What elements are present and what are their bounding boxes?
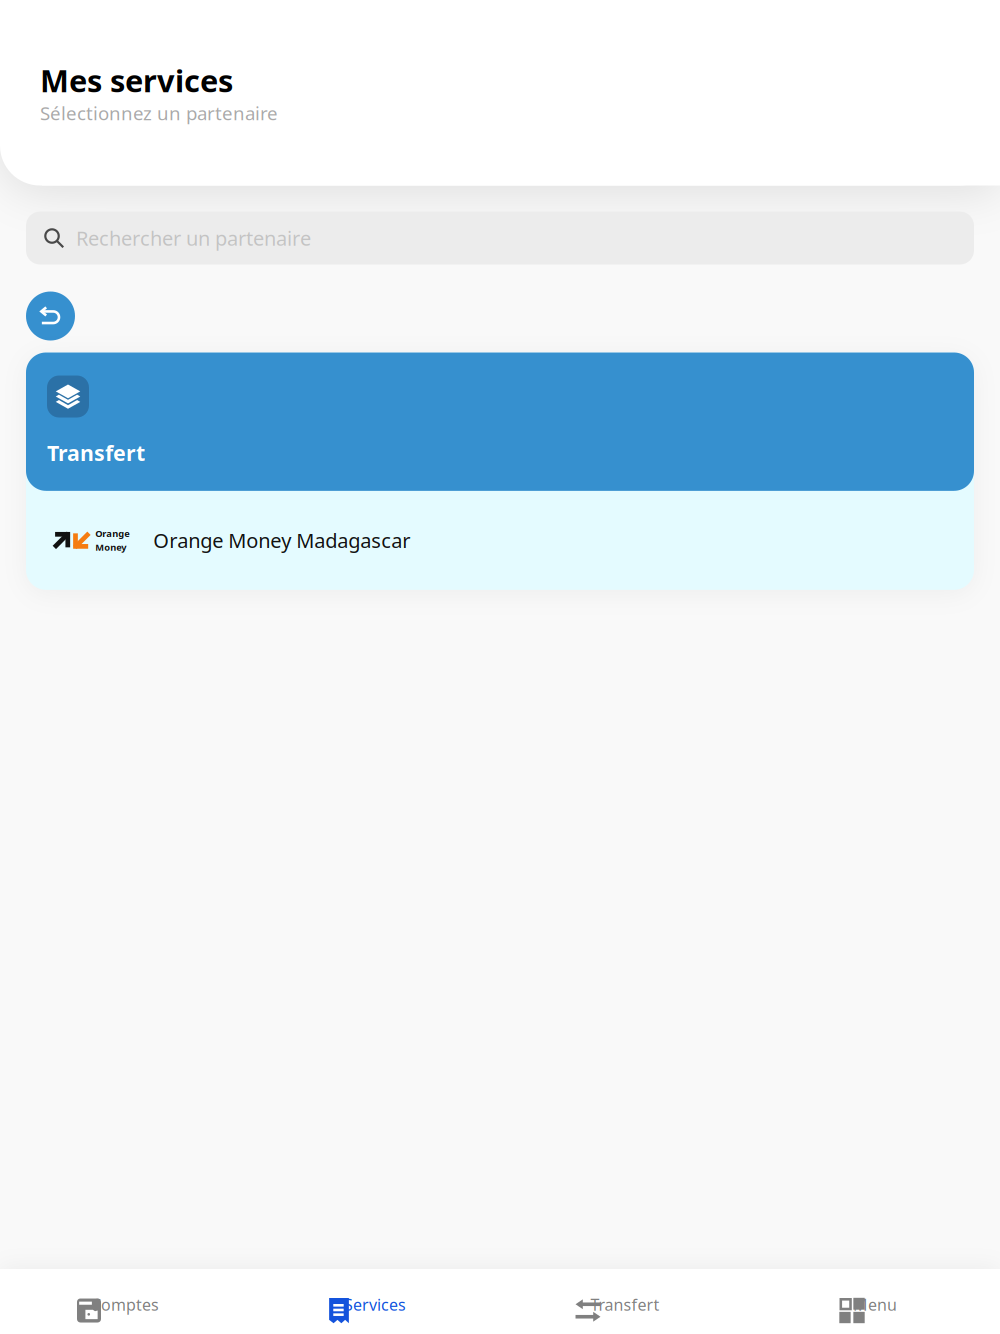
button[interactable]: Rechercher un partenaire xyxy=(26,211,974,264)
button[interactable]: Transfert xyxy=(500,1269,750,1334)
staticText: Sélectionnez un partenaire xyxy=(40,101,278,125)
staticText: Mes services xyxy=(40,60,233,101)
staticText: Orange xyxy=(95,527,130,540)
staticText: Transfert xyxy=(47,438,145,467)
button[interactable]: Services xyxy=(250,1269,500,1334)
staticText: Menu xyxy=(853,1294,897,1315)
staticText: Comptes xyxy=(91,1294,159,1315)
staticText: Services xyxy=(344,1294,406,1315)
button[interactable]: Menu xyxy=(750,1269,1000,1334)
button[interactable]: Retour xyxy=(26,291,75,340)
button[interactable]: Orange xyxy=(26,491,974,590)
button[interactable]: Comptes xyxy=(0,1269,250,1334)
staticText: Money xyxy=(95,541,126,553)
button[interactable]: Transfert xyxy=(26,352,974,491)
staticText: Rechercher un partenaire xyxy=(76,225,311,251)
staticText: Transfert xyxy=(590,1294,659,1315)
staticText: Orange Money Madagascar xyxy=(153,527,410,554)
